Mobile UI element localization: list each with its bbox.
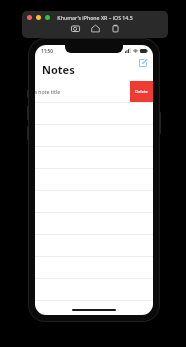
button[interactable]: Zoom bbox=[45, 15, 50, 20]
staticText: Khumar's iPhone XR – iOS 14.5 bbox=[57, 14, 133, 21]
staticText: 11:50 bbox=[41, 48, 53, 54]
button[interactable]: a note title bbox=[35, 88, 61, 95]
button[interactable]: Screenshot bbox=[70, 23, 81, 34]
staticText: Notes bbox=[42, 62, 75, 77]
button[interactable]: Home bbox=[90, 23, 101, 34]
button[interactable]: Minimize bbox=[36, 15, 41, 20]
staticText: Delete bbox=[135, 89, 148, 95]
button[interactable]: Rotate bbox=[110, 23, 121, 34]
button[interactable]: Delete bbox=[130, 81, 153, 102]
button[interactable]: Compose new note bbox=[137, 57, 148, 68]
button[interactable]: Close bbox=[27, 15, 32, 20]
